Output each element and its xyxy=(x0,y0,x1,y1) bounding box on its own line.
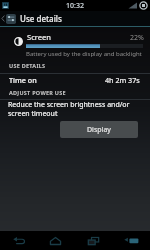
staticText: ADJUST POWER USE xyxy=(9,89,66,96)
staticText: Time on xyxy=(9,75,37,85)
staticText: 10:32 xyxy=(66,1,84,11)
staticText: Display xyxy=(87,125,111,135)
staticText: 4h 2m 37s xyxy=(105,75,140,85)
staticText: USE DETAILS xyxy=(9,62,46,69)
staticText: Reduce the screen brightness and/or scre… xyxy=(8,100,132,118)
staticText: Use details xyxy=(20,13,62,24)
button[interactable]: Navigate up xyxy=(0,11,20,26)
staticText: Screen xyxy=(27,32,52,42)
staticText: 22% xyxy=(130,33,144,43)
staticText: Battery used by the display and backligh… xyxy=(26,50,142,58)
button[interactable]: Display xyxy=(60,121,138,138)
button[interactable]: Back xyxy=(0,231,37,250)
button[interactable]: Recent apps xyxy=(74,231,112,250)
button[interactable]: Home xyxy=(37,231,74,250)
button[interactable]: Keyboard xyxy=(112,231,150,250)
